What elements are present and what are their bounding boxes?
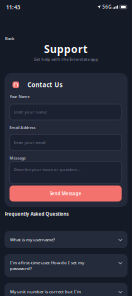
button[interactable]: My unit number is correct but I'm gettin… [4,283,127,296]
button[interactable]: Enter your email [9,134,122,150]
staticText: Back [5,36,14,41]
staticText: 11:43 [6,3,20,11]
button[interactable]: Back [0,35,19,42]
staticText: Enter your name [13,109,46,115]
staticText: 56G [102,4,111,10]
staticText: My unit number is correct but I'm gettin… [10,289,81,296]
staticText: Describe your issue or question... [13,166,80,172]
staticText: Send Message [50,190,82,197]
staticText: Support [44,42,88,56]
staticText: Your Name [9,94,29,99]
staticText: Enter your email [13,140,45,145]
button[interactable]: What is my username? [4,231,127,248]
staticText: Contact Us [27,81,62,89]
button[interactable]: Describe your issue or question... [9,161,122,183]
staticText: Email Address [9,125,35,130]
button[interactable]: I'm a first-time user. How do I set my p… [4,254,127,277]
button[interactable]: Enter your name [9,104,122,120]
staticText: I'm a first-time user. How do I set my p… [10,260,84,271]
staticText: What is my username? [10,237,55,242]
button[interactable]: Send Message [9,185,122,201]
staticText: Get help with the Interstate app [33,56,98,62]
staticText: Frequently Asked Questions [4,211,68,217]
staticText: Message [9,155,25,161]
